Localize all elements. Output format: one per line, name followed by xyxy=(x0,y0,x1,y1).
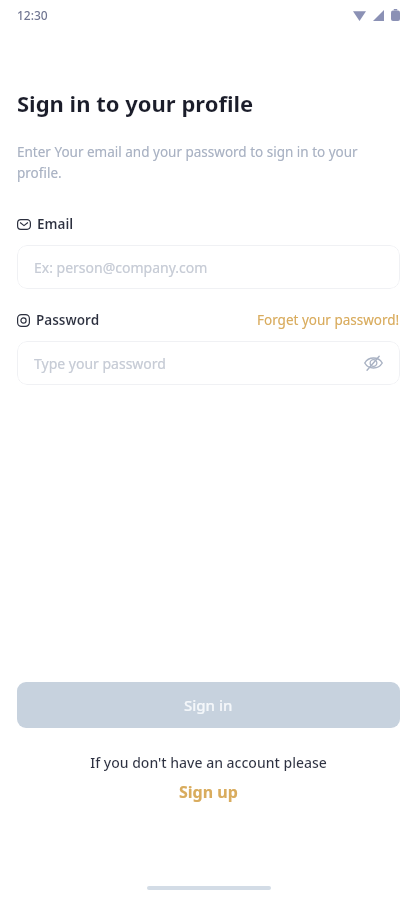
staticText: Forget your password! xyxy=(257,311,400,329)
button[interactable]: Sign up xyxy=(0,781,417,803)
staticText: If you don't have an account please xyxy=(0,753,417,772)
staticText: Sign up xyxy=(179,781,238,803)
button[interactable]: Ex: person@company.com xyxy=(17,245,400,289)
staticText: Type your password xyxy=(34,354,166,373)
button[interactable]: Forget your password! xyxy=(257,311,400,329)
staticText: Enter Your email and your password to si… xyxy=(17,143,395,182)
staticText: Sign in xyxy=(184,695,233,715)
staticText: Sign in to your profile xyxy=(17,88,254,118)
staticText: Password xyxy=(36,311,100,329)
staticText: Ex: person@company.com xyxy=(34,258,208,277)
staticText: 12:30 xyxy=(17,7,48,23)
button[interactable]: Type your password xyxy=(17,341,400,385)
button[interactable]: Sign in xyxy=(17,682,400,728)
staticText: Email xyxy=(37,215,74,233)
button[interactable]: Show password xyxy=(360,350,386,376)
